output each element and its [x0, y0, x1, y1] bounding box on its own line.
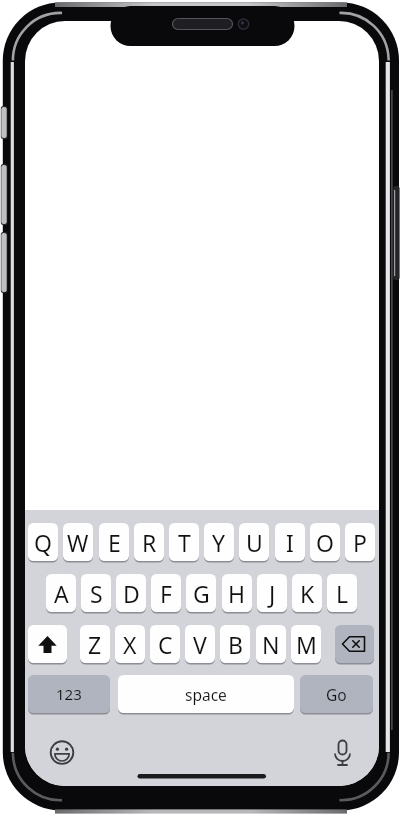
- button[interactable]: E: [99, 523, 129, 561]
- staticText: Y: [212, 527, 226, 558]
- button[interactable]: 123: [28, 675, 110, 713]
- button[interactable]: X: [115, 625, 145, 663]
- button[interactable]: N: [256, 625, 286, 663]
- staticText: N: [262, 629, 280, 660]
- button[interactable]: M: [291, 625, 321, 663]
- staticText: F: [160, 578, 172, 609]
- button[interactable]: L: [327, 574, 357, 612]
- staticText: U: [246, 527, 263, 558]
- staticText: D: [123, 578, 140, 609]
- staticText: B: [228, 629, 243, 660]
- button[interactable]: C: [150, 625, 180, 663]
- staticText: J: [269, 578, 276, 609]
- button[interactable]: Y: [204, 523, 234, 561]
- staticText: W: [67, 527, 89, 558]
- button[interactable]: A: [46, 574, 76, 612]
- button[interactable]: U: [239, 523, 269, 561]
- button[interactable]: H: [222, 574, 252, 612]
- staticText: I: [286, 527, 294, 558]
- staticText: G: [193, 578, 210, 609]
- button[interactable]: V: [185, 625, 215, 663]
- button[interactable]: G: [186, 574, 216, 612]
- staticText: Go: [326, 684, 347, 705]
- staticText: X: [123, 629, 137, 660]
- button[interactable]: Z: [80, 625, 110, 663]
- staticText: S: [90, 578, 103, 609]
- staticText: E: [108, 527, 121, 558]
- button[interactable]: W: [63, 523, 93, 561]
- staticText: R: [142, 527, 157, 558]
- staticText: H: [228, 578, 246, 609]
- button[interactable]: D: [116, 574, 146, 612]
- staticText: Z: [88, 629, 102, 660]
- button[interactable]: P: [345, 523, 375, 561]
- staticText: K: [300, 578, 315, 609]
- staticText: M: [296, 629, 317, 660]
- button[interactable]: O: [310, 523, 340, 561]
- button[interactable]: T: [169, 523, 199, 561]
- staticText: L: [336, 578, 349, 609]
- staticText: O: [316, 527, 334, 558]
- staticText: space: [185, 684, 227, 705]
- staticText: P: [353, 527, 367, 558]
- button[interactable]: F: [151, 574, 181, 612]
- button[interactable]: S: [81, 574, 111, 612]
- button[interactable]: B: [220, 625, 250, 663]
- button[interactable]: space: [118, 675, 294, 713]
- staticText: 123: [56, 684, 82, 704]
- staticText: V: [193, 629, 207, 660]
- button[interactable]: J: [257, 574, 287, 612]
- staticText: A: [54, 578, 69, 609]
- button[interactable]: Go: [300, 675, 373, 713]
- staticText: C: [158, 629, 173, 660]
- button[interactable]: K: [292, 574, 322, 612]
- button[interactable]: I: [275, 523, 305, 561]
- button[interactable]: [335, 625, 374, 663]
- staticText: Q: [34, 527, 52, 558]
- button[interactable]: [28, 625, 67, 663]
- staticText: T: [178, 527, 191, 558]
- button[interactable]: Q: [28, 523, 58, 561]
- button[interactable]: R: [134, 523, 164, 561]
